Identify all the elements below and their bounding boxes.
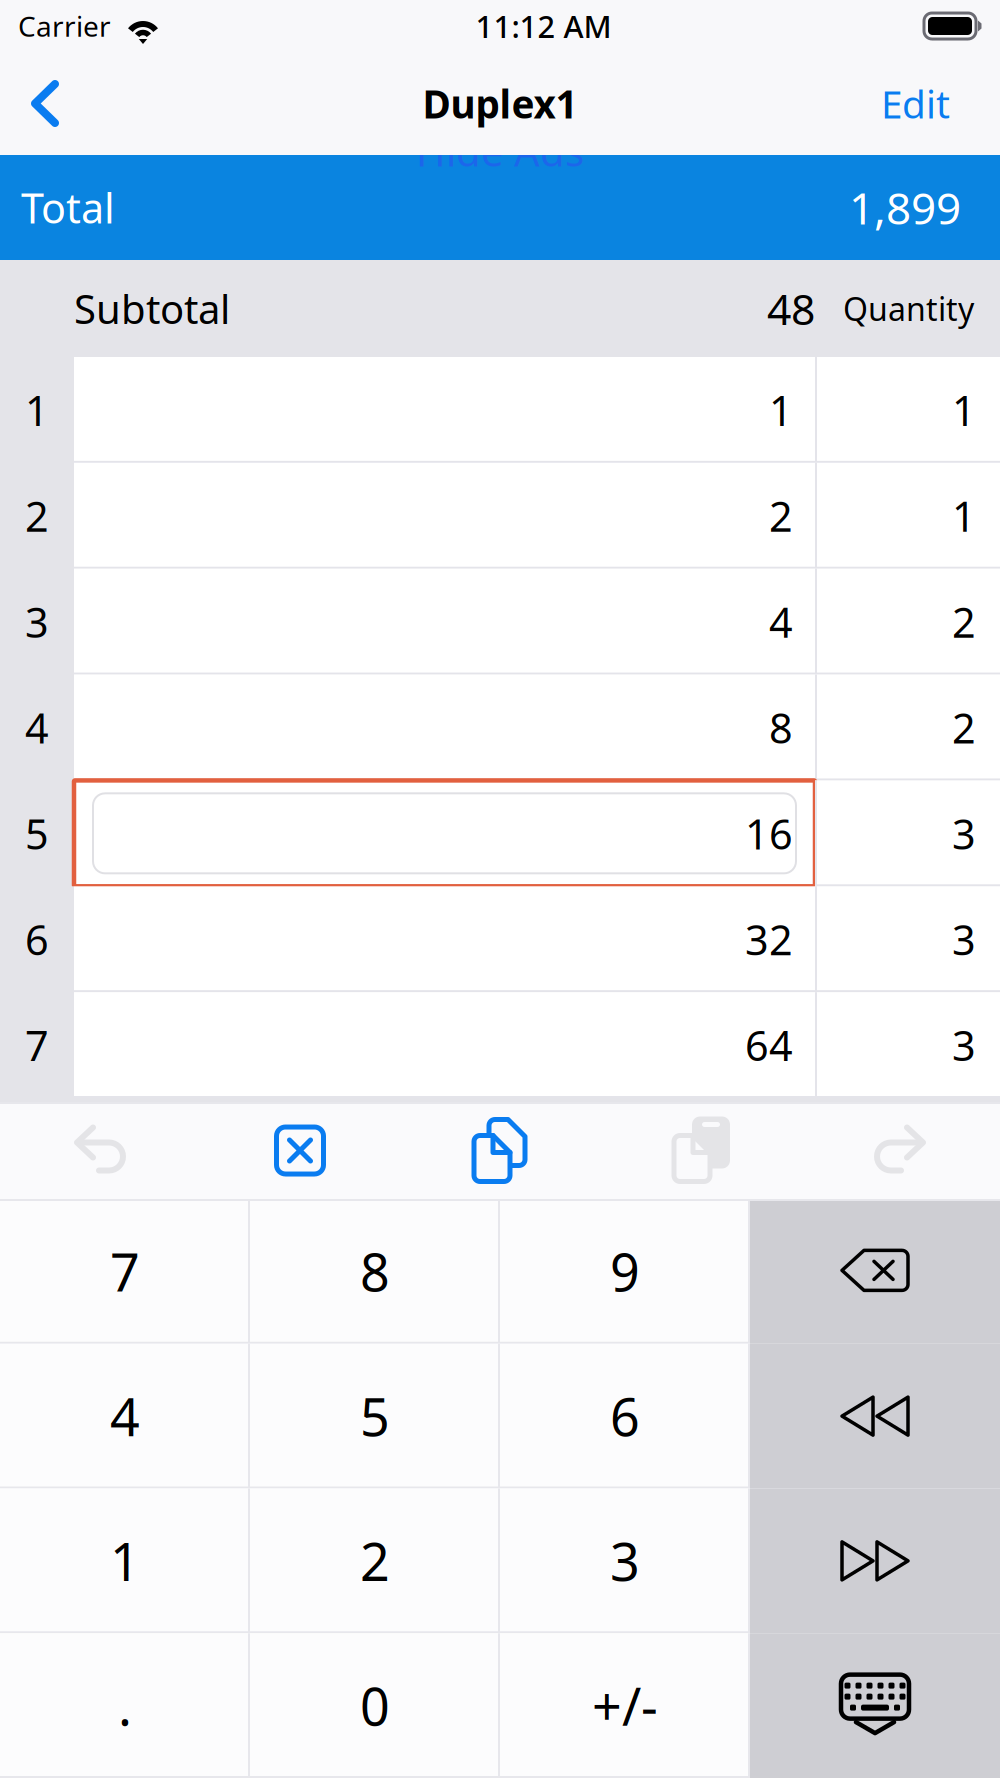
staticText: 7: [110, 1237, 140, 1306]
button[interactable]: 4: [0, 1344, 250, 1489]
button[interactable]: 8: [74, 675, 815, 780]
staticText: 2: [952, 594, 976, 649]
button[interactable]: 2: [815, 675, 1000, 780]
button[interactable]: 3: [815, 992, 1000, 1098]
button[interactable]: 0: [250, 1633, 500, 1778]
staticText: Quantity: [843, 287, 974, 330]
staticText: 8: [769, 700, 793, 755]
staticText: 3: [610, 1526, 640, 1595]
button[interactable]: 6: [500, 1344, 750, 1489]
button[interactable]: Back: [0, 52, 90, 155]
button[interactable]: 1: [815, 463, 1000, 569]
button[interactable]: 2: [815, 569, 1000, 675]
button[interactable]: 1: [815, 357, 1000, 463]
staticText: 2: [952, 700, 976, 755]
staticText: Carrier: [18, 7, 111, 45]
button[interactable]: .: [0, 1633, 250, 1778]
staticText: 64: [745, 1018, 793, 1072]
staticText: 1: [110, 1526, 140, 1595]
staticText: 11:12 AM: [475, 6, 611, 46]
button[interactable]: 3: [500, 1488, 750, 1633]
button[interactable]: Copy: [400, 1102, 600, 1199]
staticText: 3: [952, 806, 976, 861]
button[interactable]: 3: [815, 886, 1000, 992]
staticText: Total: [21, 180, 115, 235]
staticText: Subtotal: [74, 282, 230, 335]
button[interactable]: Next: [750, 1488, 1000, 1633]
staticText: 2: [769, 488, 793, 543]
staticText: 48: [767, 280, 815, 337]
staticText: 9: [610, 1237, 640, 1306]
staticText: 1,899: [849, 178, 961, 237]
staticText: 4: [25, 700, 49, 755]
button[interactable]: 9: [500, 1199, 750, 1344]
button[interactable]: Previous: [750, 1344, 1000, 1489]
staticText: +/-: [592, 1671, 658, 1740]
staticText: 8: [360, 1237, 390, 1306]
button[interactable]: 5: [250, 1344, 500, 1489]
staticText: 1: [952, 382, 976, 437]
button[interactable]: 3: [815, 780, 1000, 886]
staticText: 2: [360, 1526, 390, 1595]
button[interactable]: Paste: [600, 1102, 800, 1199]
button[interactable]: Delete: [750, 1199, 1000, 1344]
button[interactable]: Undo: [0, 1102, 200, 1199]
button[interactable]: 1: [74, 357, 815, 463]
staticText: 4: [769, 594, 793, 649]
button[interactable]: 8: [250, 1199, 500, 1344]
button[interactable]: Redo: [800, 1102, 1000, 1199]
staticText: 1: [769, 382, 793, 437]
staticText: 0: [360, 1671, 390, 1740]
staticText: 2: [25, 488, 49, 543]
staticText: 5: [360, 1382, 390, 1451]
staticText: 1: [952, 488, 976, 543]
staticText: 6: [610, 1382, 640, 1451]
staticText: 6: [25, 912, 49, 967]
button[interactable]: Hide Keyboard: [750, 1633, 1000, 1778]
staticText: 16: [745, 806, 793, 861]
staticText: 3: [25, 594, 49, 649]
staticText: Duplex1: [422, 78, 577, 129]
button[interactable]: +/-: [500, 1633, 750, 1778]
button[interactable]: 1: [0, 1488, 250, 1633]
staticText: 32: [745, 912, 793, 967]
staticText: 3: [952, 912, 976, 967]
button[interactable]: 64: [74, 992, 815, 1098]
button[interactable]: 2: [250, 1488, 500, 1633]
staticText: 7: [25, 1018, 49, 1072]
staticText: 3: [952, 1018, 976, 1072]
staticText: Hide Ads: [416, 124, 584, 177]
staticText: 4: [110, 1382, 140, 1451]
button[interactable]: Edit: [881, 52, 1000, 155]
button[interactable]: Clear: [200, 1102, 400, 1199]
staticText: .: [118, 1671, 132, 1740]
button[interactable]: 4: [74, 569, 815, 675]
staticText: Edit: [881, 78, 950, 129]
staticText: 1: [25, 382, 49, 437]
button[interactable]: 7: [0, 1199, 250, 1344]
button[interactable]: 16: [74, 780, 815, 886]
staticText: 5: [25, 806, 49, 861]
button[interactable]: 32: [74, 886, 815, 992]
button[interactable]: 2: [74, 463, 815, 569]
